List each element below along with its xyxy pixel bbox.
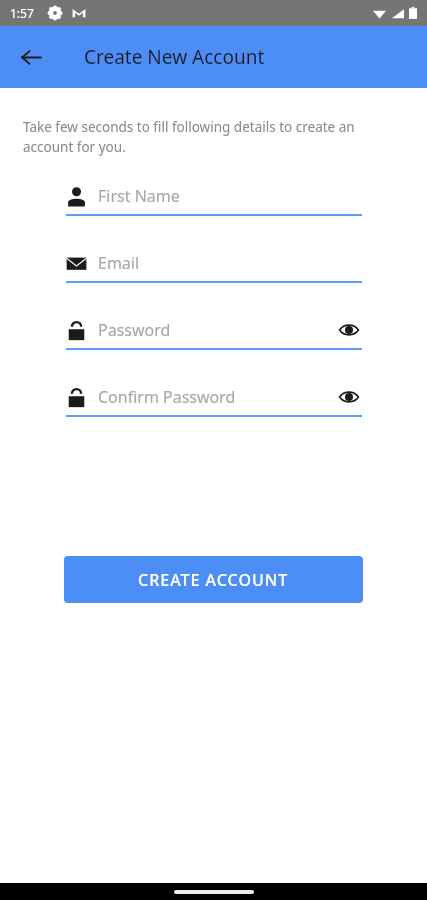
staticText: Password [98, 319, 171, 341]
button[interactable]: Show password [336, 317, 362, 343]
button[interactable]: Email [66, 248, 362, 283]
button[interactable]: First Name [66, 181, 362, 216]
button[interactable]: Back [14, 40, 48, 74]
button[interactable]: CREATE ACCOUNT [64, 556, 363, 603]
staticText: First Name [98, 185, 180, 207]
staticText: Take few seconds to fill following detai… [23, 118, 399, 156]
staticText: Email [98, 252, 140, 274]
staticText: Confirm Password [98, 386, 236, 408]
staticText: 1:57 [10, 5, 34, 21]
button[interactable]: Show password [336, 384, 362, 410]
button[interactable]: Password [66, 315, 362, 350]
button[interactable]: Confirm Password [66, 382, 362, 417]
staticText: CREATE ACCOUNT [138, 569, 289, 591]
staticText: Create New Account [84, 44, 265, 70]
